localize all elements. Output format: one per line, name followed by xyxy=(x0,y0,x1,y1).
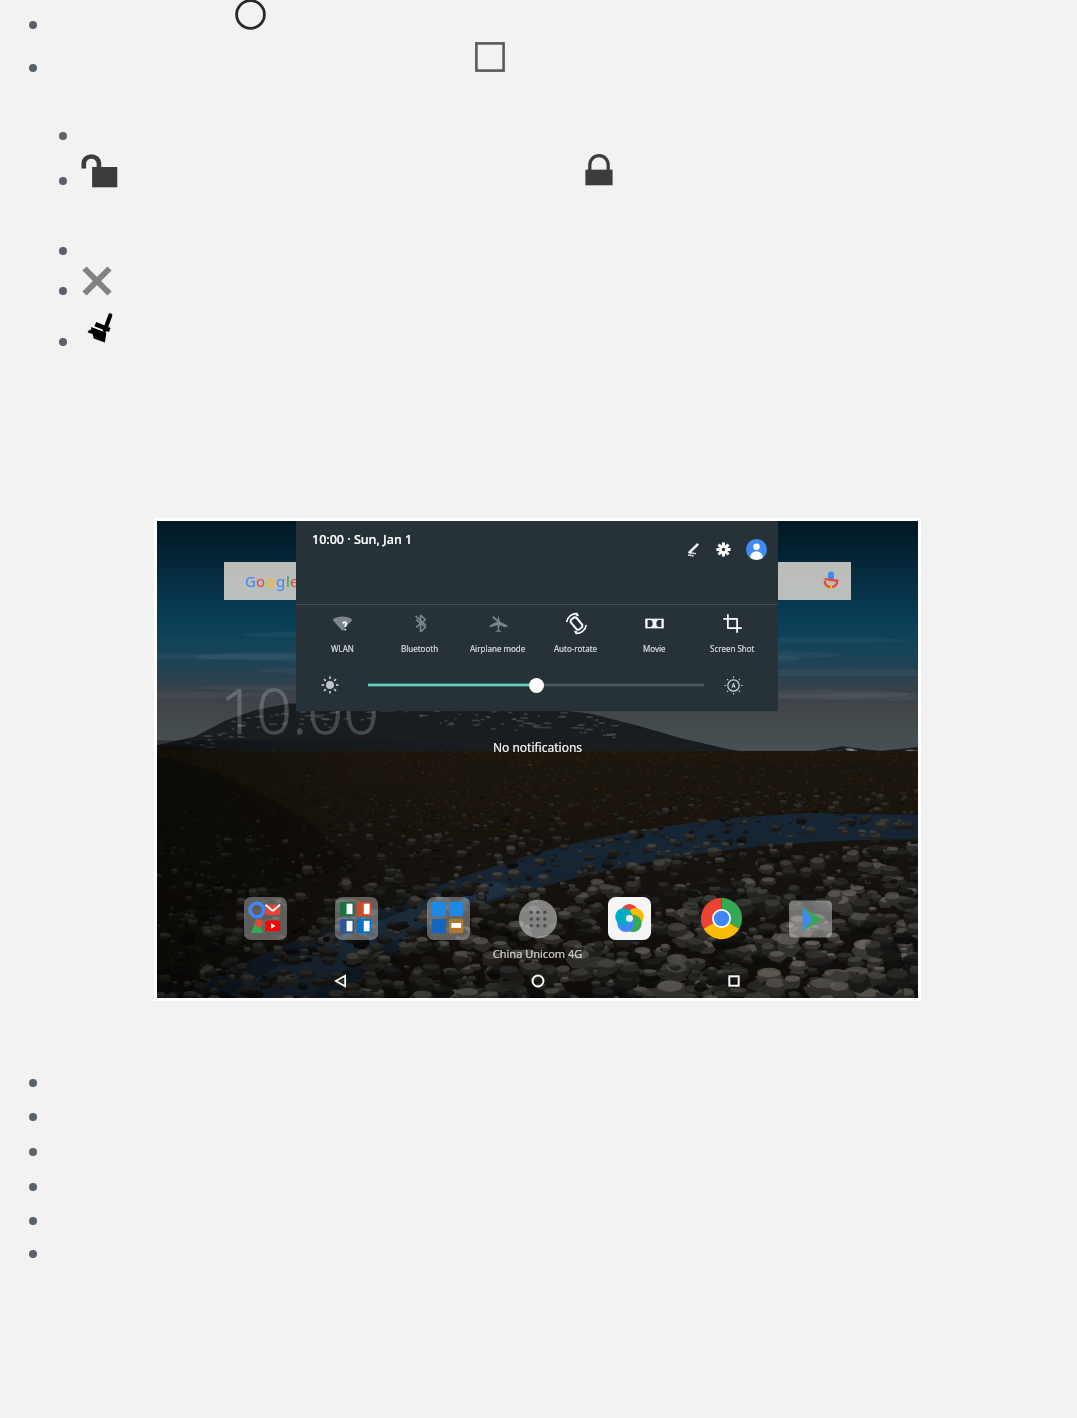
button[interactable]: User xyxy=(746,539,767,560)
other: Clean xyxy=(84,310,120,346)
other: Recents circle xyxy=(235,0,266,30)
other: Close xyxy=(80,264,114,298)
staticText: l xyxy=(286,571,290,591)
button[interactable]: Google folder xyxy=(244,897,287,940)
other: Locked xyxy=(582,154,616,188)
staticText: Airplane mode xyxy=(470,643,526,654)
staticText: e xyxy=(290,571,299,591)
button[interactable]: Recents xyxy=(721,968,747,994)
other: Unlocked xyxy=(81,153,118,188)
staticText: Auto-rotate xyxy=(554,643,598,654)
staticText: No notifications xyxy=(157,739,918,755)
button[interactable]: Play Store xyxy=(789,897,832,940)
button[interactable]: Home xyxy=(525,968,551,994)
staticText: Bluetooth xyxy=(401,643,439,654)
button[interactable]: Bluetooth xyxy=(381,613,459,654)
staticText: Movie xyxy=(643,643,666,654)
button[interactable]: Edit xyxy=(684,542,700,558)
button[interactable]: Google search xyxy=(224,562,851,600)
button[interactable]: Screen Shot xyxy=(693,613,771,654)
button[interactable]: All apps xyxy=(518,899,558,939)
button[interactable]: Settings xyxy=(716,542,731,557)
other: Overview square xyxy=(475,42,505,72)
button[interactable]: Back xyxy=(328,968,354,994)
staticText: G xyxy=(245,571,256,591)
staticText: o xyxy=(266,571,276,591)
button[interactable]: Tools folder xyxy=(427,897,470,940)
button[interactable]: WLAN xyxy=(304,613,381,654)
button[interactable]: Auto-rotate xyxy=(537,613,615,654)
button[interactable]: Chrome xyxy=(700,897,743,940)
button[interactable]: Movie xyxy=(615,613,693,654)
staticText: 10:00 xyxy=(220,667,380,753)
button[interactable]: Office folder xyxy=(335,897,378,940)
button[interactable]: Airplane mode xyxy=(459,613,537,654)
button[interactable]: Brightness xyxy=(321,676,339,694)
staticText: China Unicom 4G xyxy=(157,946,918,961)
button[interactable]: Voice search xyxy=(821,570,841,590)
staticText: Screen Shot xyxy=(710,643,755,654)
staticText: 10:00 · Sun, Jan 1 xyxy=(312,531,413,548)
staticText: g xyxy=(276,571,286,591)
staticText: WLAN xyxy=(331,643,354,654)
button[interactable]: Auto brightness xyxy=(724,676,743,695)
staticText: o xyxy=(256,571,266,591)
button[interactable]: Photos xyxy=(608,897,651,940)
